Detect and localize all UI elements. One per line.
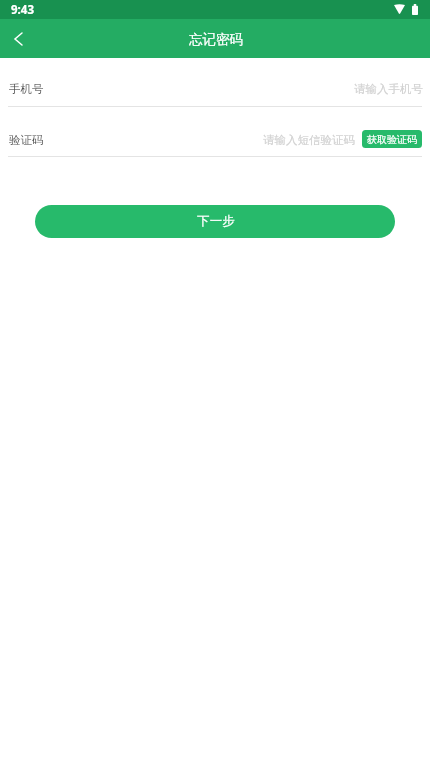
staticText: 9:43 [11, 2, 34, 18]
staticText: 请输入短信验证码 [263, 133, 355, 147]
button[interactable]: Back [0, 21, 36, 57]
staticText: 下一步 [197, 213, 235, 229]
button[interactable]: 获取验证码 [362, 130, 422, 148]
staticText: 获取验证码 [367, 133, 417, 146]
other: Battery [412, 4, 418, 15]
other: Wi-Fi signal [394, 4, 405, 14]
staticText: 手机号 [9, 82, 44, 96]
button[interactable]: 手机号 [0, 70, 430, 106]
staticText: 忘记密码 [189, 31, 243, 48]
staticText: 验证码 [9, 133, 44, 147]
button[interactable]: 下一步 [35, 205, 395, 238]
button[interactable]: 验证码 [8, 122, 355, 156]
staticText: 请输入手机号 [354, 82, 423, 96]
